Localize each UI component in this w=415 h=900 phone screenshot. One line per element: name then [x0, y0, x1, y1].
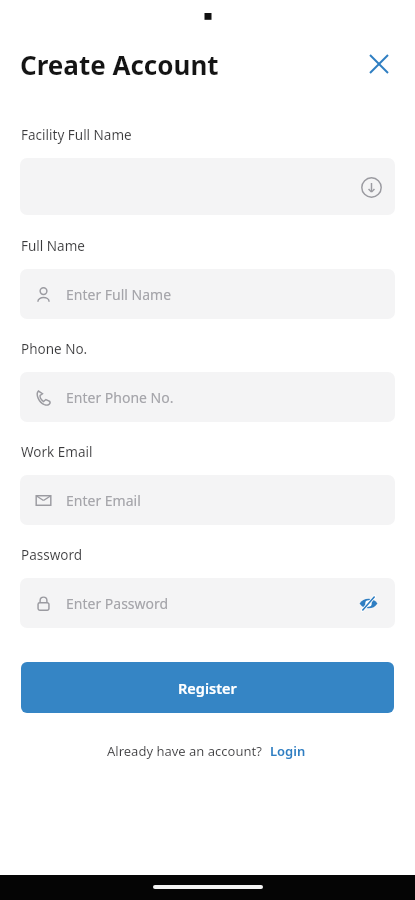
button[interactable]: Enter Email — [20, 475, 395, 525]
staticText: Enter Phone No. — [66, 388, 174, 407]
staticText: Password — [21, 546, 83, 564]
staticText: Enter Full Name — [66, 285, 172, 304]
button[interactable]: Close — [359, 44, 399, 84]
staticText: Login — [270, 742, 306, 760]
button[interactable]: Show password — [350, 585, 386, 621]
staticText: Enter Email — [66, 491, 141, 510]
staticText: Work Email — [21, 443, 93, 461]
staticText: Full Name — [21, 237, 85, 255]
staticText: Enter Password — [66, 594, 169, 613]
staticText: Phone No. — [21, 340, 88, 358]
staticText: Create Account — [20, 47, 219, 82]
button[interactable]: Enter Password — [20, 578, 395, 628]
staticText: Already have an account? — [107, 742, 262, 760]
button[interactable]: Register — [21, 662, 394, 713]
staticText: Register — [178, 678, 237, 698]
button[interactable]: Facility Full Name — [20, 158, 395, 215]
button[interactable]: Login — [268, 740, 308, 762]
button[interactable]: Enter Full Name — [20, 269, 395, 319]
staticText: Facility Full Name — [21, 126, 132, 144]
button[interactable]: Enter Phone No. — [20, 372, 395, 422]
